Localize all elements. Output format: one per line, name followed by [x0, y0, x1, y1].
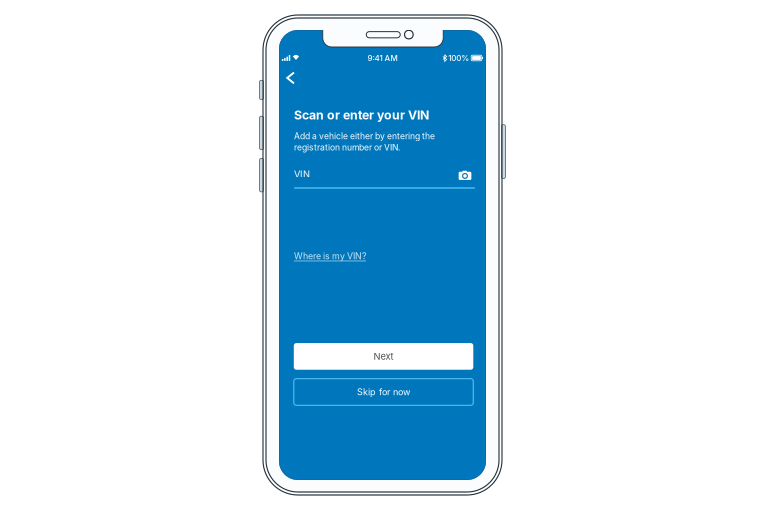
staticText: 100%: [448, 53, 469, 63]
button[interactable]: Next: [294, 343, 473, 370]
staticText: Scan or enter your VIN: [294, 108, 429, 122]
staticText: registration number or VIN.: [294, 142, 400, 153]
staticText: Where is my VIN?: [294, 251, 366, 261]
button[interactable]: Scan VIN with camera: [459, 169, 471, 180]
staticText: Next: [374, 351, 394, 362]
button[interactable]: Where is my VIN?: [294, 250, 475, 262]
button[interactable]: Back: [284, 68, 304, 88]
staticText: VIN: [294, 168, 310, 180]
staticText: Add a vehicle either by entering the: [294, 131, 435, 141]
staticText: 9:41 AM: [367, 53, 397, 63]
staticText: Skip for now: [357, 386, 410, 397]
button[interactable]: Skip for now: [294, 379, 473, 405]
